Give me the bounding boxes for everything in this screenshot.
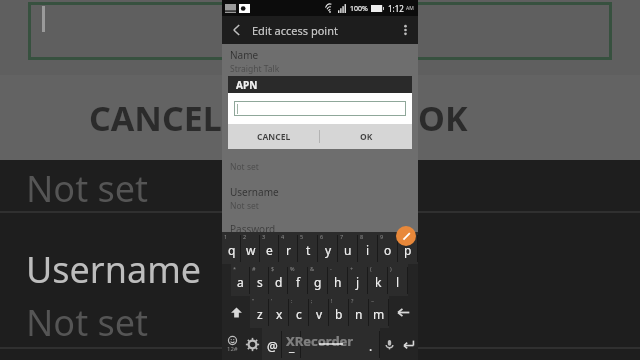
button[interactable]: Back bbox=[222, 16, 252, 44]
staticText: Not set bbox=[230, 161, 259, 173]
button[interactable]: 1 bbox=[222, 232, 241, 264]
button[interactable]: Voice input bbox=[380, 328, 399, 360]
button[interactable]: 8 bbox=[358, 232, 378, 264]
staticText: * bbox=[233, 265, 237, 272]
staticText: ? bbox=[351, 297, 354, 304]
button[interactable]: + bbox=[348, 264, 368, 296]
staticText: APN bbox=[236, 78, 258, 92]
button[interactable]: 2 bbox=[241, 232, 260, 264]
staticText: l bbox=[396, 274, 400, 290]
staticText: : bbox=[291, 297, 293, 304]
staticText: 9 bbox=[380, 233, 384, 240]
button[interactable]: 3 bbox=[260, 232, 279, 264]
staticText: 3 bbox=[262, 233, 266, 240]
staticText: 6 bbox=[320, 233, 324, 240]
button[interactable]: Enter bbox=[399, 328, 418, 360]
staticText: z bbox=[257, 306, 263, 322]
button[interactable]: 9 bbox=[378, 232, 398, 264]
staticText: AM bbox=[406, 5, 414, 12]
staticText: XRecorder bbox=[286, 332, 354, 350]
staticText: ' bbox=[271, 297, 273, 304]
staticText: ( bbox=[370, 265, 372, 272]
button[interactable]: 0 bbox=[398, 232, 418, 264]
staticText: OK bbox=[418, 95, 468, 141]
staticText: r bbox=[286, 242, 291, 258]
staticText: f bbox=[296, 274, 301, 290]
staticText: h bbox=[334, 274, 342, 290]
staticText: j bbox=[356, 274, 360, 290]
staticText: Username bbox=[26, 245, 202, 294]
staticText: CANCEL bbox=[257, 131, 291, 143]
staticText: Name bbox=[230, 48, 259, 62]
button[interactable]: ! bbox=[329, 296, 349, 328]
button[interactable]: CANCEL bbox=[228, 124, 319, 149]
button[interactable]: _ bbox=[282, 328, 301, 360]
button[interactable]: % bbox=[288, 264, 308, 296]
staticText: 1 bbox=[224, 233, 228, 240]
button[interactable]: " bbox=[250, 296, 269, 328]
staticText: 0 bbox=[400, 233, 404, 240]
button[interactable]: 4 bbox=[279, 232, 298, 264]
staticText: 100% bbox=[350, 4, 368, 14]
button[interactable]: ; bbox=[309, 296, 329, 328]
button[interactable] bbox=[234, 101, 406, 116]
button[interactable]: Settings bbox=[242, 328, 262, 360]
staticText: 7 bbox=[340, 233, 344, 240]
staticText: ! bbox=[331, 297, 333, 304]
staticText: Straight Talk bbox=[230, 63, 280, 75]
staticText: 5 bbox=[300, 233, 304, 240]
button[interactable]: : bbox=[289, 296, 309, 328]
staticText: t bbox=[306, 242, 311, 258]
button[interactable]: Symbols bbox=[222, 328, 242, 360]
button[interactable]: ' bbox=[269, 296, 289, 328]
button[interactable]: Backspace bbox=[389, 296, 418, 328]
staticText: e bbox=[266, 242, 273, 258]
button[interactable]: ? bbox=[349, 296, 369, 328]
button[interactable]: Recorder bbox=[396, 226, 416, 246]
staticText: y bbox=[325, 242, 332, 258]
button[interactable]: ) bbox=[388, 264, 408, 296]
button[interactable]: - bbox=[328, 264, 348, 296]
staticText: - bbox=[330, 265, 332, 272]
staticText: g bbox=[314, 274, 322, 290]
staticText: $ bbox=[271, 265, 275, 272]
button[interactable]: 6 bbox=[318, 232, 338, 264]
button[interactable]: 5 bbox=[298, 232, 318, 264]
staticText: k bbox=[375, 274, 382, 290]
button[interactable]: More options bbox=[392, 16, 418, 44]
staticText: b bbox=[335, 306, 343, 322]
staticText: # bbox=[252, 265, 256, 272]
button[interactable]: # bbox=[250, 264, 269, 296]
button[interactable]: & bbox=[308, 264, 328, 296]
staticText: CANCEL bbox=[89, 95, 222, 141]
button[interactable]: ( bbox=[368, 264, 388, 296]
button[interactable]: * bbox=[231, 264, 250, 296]
staticText: q bbox=[228, 242, 236, 258]
staticText: 2 bbox=[243, 233, 247, 240]
button[interactable]: @ bbox=[262, 328, 282, 360]
staticText: 4 bbox=[281, 233, 285, 240]
staticText: i bbox=[366, 242, 370, 258]
button[interactable]: Space bbox=[301, 328, 361, 360]
button[interactable]: Shift bbox=[222, 296, 250, 328]
staticText: " bbox=[252, 297, 255, 304]
staticText: % bbox=[290, 265, 295, 272]
staticText: o bbox=[384, 242, 392, 258]
staticText: p bbox=[404, 242, 412, 258]
staticText: m bbox=[373, 306, 385, 322]
staticText: u bbox=[344, 242, 352, 258]
staticText: Not set bbox=[230, 200, 259, 212]
staticText: v bbox=[316, 306, 323, 322]
staticText: ) bbox=[390, 265, 392, 272]
button[interactable]: $ bbox=[269, 264, 288, 296]
button[interactable]: 7 bbox=[338, 232, 358, 264]
staticText: ; bbox=[311, 297, 313, 304]
button[interactable]: ~ bbox=[369, 296, 389, 328]
staticText: & bbox=[310, 265, 315, 272]
button[interactable]: OK bbox=[320, 124, 412, 149]
staticText: w bbox=[246, 242, 256, 258]
staticText: + bbox=[350, 265, 354, 272]
staticText: x bbox=[276, 306, 283, 322]
button[interactable]: . bbox=[361, 328, 380, 360]
staticText: Password bbox=[230, 222, 276, 232]
